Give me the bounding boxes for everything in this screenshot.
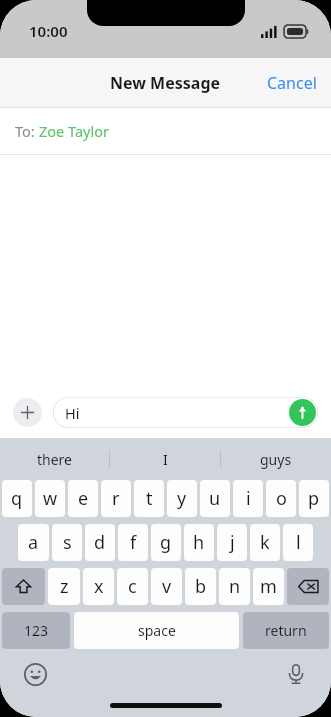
staticText: k xyxy=(260,530,270,555)
button[interactable]: space xyxy=(74,612,239,649)
staticText: q xyxy=(11,486,23,511)
button[interactable]: h xyxy=(184,524,214,561)
staticText: y xyxy=(177,486,187,511)
button[interactable]: i xyxy=(233,480,263,517)
button[interactable]: k xyxy=(250,524,280,561)
button[interactable]: Send xyxy=(289,399,316,426)
staticText: g xyxy=(160,530,172,555)
staticText: New Message xyxy=(110,72,221,94)
staticText: o xyxy=(276,486,287,511)
button[interactable]: return xyxy=(243,612,329,649)
staticText: s xyxy=(63,530,72,555)
staticText: t xyxy=(146,486,153,511)
button[interactable]: u xyxy=(200,480,230,517)
staticText: Cancel xyxy=(267,72,317,94)
button[interactable]: b xyxy=(185,568,216,605)
staticText: p xyxy=(308,486,320,511)
button[interactable]: v xyxy=(151,568,182,605)
staticText: b xyxy=(195,574,207,599)
staticText: r xyxy=(112,486,120,511)
button[interactable]: l xyxy=(283,524,313,561)
button[interactable]: y xyxy=(167,480,197,517)
staticText: Zoe Taylor xyxy=(39,121,109,141)
staticText: there xyxy=(37,450,72,469)
staticText: j xyxy=(230,530,235,555)
button[interactable]: j xyxy=(217,524,247,561)
staticText: return xyxy=(265,621,307,640)
button[interactable]: w xyxy=(35,480,65,517)
staticText: m xyxy=(260,574,277,599)
staticText: 10:00 xyxy=(29,21,68,41)
button[interactable]: 123 xyxy=(2,612,70,649)
button[interactable]: t xyxy=(134,480,164,517)
button[interactable]: d xyxy=(85,524,115,561)
button[interactable]: Hi xyxy=(53,397,318,428)
button[interactable]: x xyxy=(83,568,114,605)
button[interactable]: z xyxy=(48,568,80,605)
staticText: w xyxy=(43,486,58,511)
button[interactable]: I xyxy=(110,438,220,480)
button[interactable]: Backspace xyxy=(287,568,329,605)
button[interactable]: o xyxy=(266,480,296,517)
button[interactable]: To: xyxy=(0,108,331,154)
button[interactable]: q xyxy=(2,480,32,517)
staticText: I xyxy=(163,450,168,469)
button[interactable]: s xyxy=(52,524,82,561)
staticText: h xyxy=(193,530,205,555)
button[interactable]: there xyxy=(0,438,109,480)
button[interactable]: r xyxy=(101,480,131,517)
button[interactable]: a xyxy=(18,524,49,561)
staticText: To: xyxy=(15,121,39,141)
button[interactable]: Cancel xyxy=(253,62,331,104)
button[interactable]: n xyxy=(219,568,250,605)
staticText: u xyxy=(209,486,221,511)
button[interactable]: Add attachment xyxy=(13,398,42,427)
button[interactable]: guys xyxy=(221,438,331,480)
staticText: x xyxy=(94,574,104,599)
staticText: f xyxy=(130,530,137,555)
staticText: 123 xyxy=(24,621,49,640)
button[interactable]: p xyxy=(299,480,329,517)
staticText: i xyxy=(246,486,251,511)
button[interactable]: Emoji xyxy=(22,661,48,687)
button[interactable]: f xyxy=(118,524,148,561)
button[interactable]: Dictation xyxy=(283,661,309,687)
staticText: Hi xyxy=(65,403,80,423)
staticText: c xyxy=(128,574,137,599)
staticText: e xyxy=(78,486,89,511)
staticText: v xyxy=(162,574,172,599)
button[interactable]: c xyxy=(117,568,148,605)
staticText: a xyxy=(28,530,39,555)
staticText: d xyxy=(94,530,106,555)
button[interactable]: g xyxy=(151,524,181,561)
button[interactable]: m xyxy=(253,568,284,605)
staticText: guys xyxy=(260,450,292,469)
button[interactable]: e xyxy=(68,480,98,517)
staticText: l xyxy=(296,530,301,555)
staticText: n xyxy=(229,574,241,599)
button[interactable]: Shift xyxy=(2,568,45,605)
staticText: space xyxy=(138,621,176,640)
staticText: z xyxy=(60,574,69,599)
